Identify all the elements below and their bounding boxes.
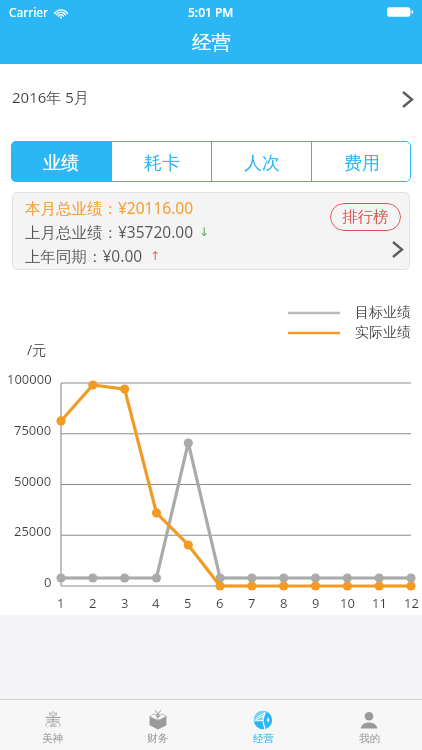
staticText: 25000 <box>14 522 52 540</box>
staticText: 8 <box>280 594 288 612</box>
staticText: Carrier <box>9 4 49 20</box>
staticText: 7 <box>248 594 256 612</box>
staticText: 5:01 PM <box>188 4 234 20</box>
staticText: 业绩 <box>43 152 79 175</box>
staticText: 耗卡 <box>144 152 180 175</box>
staticText: 经营 <box>192 30 231 55</box>
staticText: 4 <box>152 594 160 612</box>
button[interactable]: 耗卡 <box>112 141 211 182</box>
button[interactable]: 费用 <box>312 141 411 182</box>
staticText: 上年同期：¥0.00 <box>25 245 143 266</box>
button[interactable]: 经营 <box>210 700 316 750</box>
staticText: 50000 <box>14 472 52 490</box>
staticText: 9 <box>312 594 320 612</box>
staticText: ↑ <box>150 249 161 263</box>
button[interactable]: 我的 <box>316 700 422 750</box>
staticText: ↓ <box>199 225 210 239</box>
other: 美神 <box>43 710 63 730</box>
button[interactable]: 美神 <box>0 700 105 750</box>
staticText: 本月总业绩：¥20116.00 <box>25 197 194 218</box>
button[interactable]: 排行榜 <box>330 203 401 231</box>
other: 经营 <box>253 710 273 730</box>
staticText: 美神 <box>42 732 63 745</box>
staticText: 12 <box>404 594 419 612</box>
staticText: 6 <box>216 594 224 612</box>
other: Select month <box>403 92 412 107</box>
button[interactable]: 本月总业绩：¥20116.00 <box>12 192 410 270</box>
button[interactable]: 业绩 <box>11 141 111 182</box>
staticText: 10 <box>340 594 355 612</box>
other: 财务 <box>148 710 168 730</box>
staticText: 排行榜 <box>342 207 389 227</box>
button[interactable]: 人次 <box>212 141 311 182</box>
button[interactable]: 2016年 5月 <box>0 64 422 129</box>
staticText: 目标业绩 <box>355 304 411 322</box>
staticText: 经营 <box>253 732 274 745</box>
staticText: 财务 <box>147 732 168 745</box>
staticText: 我的 <box>359 732 380 745</box>
staticText: 11 <box>372 594 387 612</box>
staticText: 0 <box>44 573 52 591</box>
staticText: 2 <box>89 594 97 612</box>
staticText: 人次 <box>244 152 280 175</box>
staticText: 2016年 5月 <box>12 87 89 107</box>
other: 我的 <box>359 710 379 730</box>
staticText: 3 <box>121 594 129 612</box>
staticText: 上月总业绩：¥35720.00 <box>25 221 194 242</box>
button[interactable]: 财务 <box>105 700 210 750</box>
staticText: 75000 <box>14 421 52 439</box>
staticText: 5 <box>184 594 192 612</box>
staticText: 100000 <box>7 370 52 388</box>
staticText: 实际业绩 <box>355 324 411 342</box>
staticText: 费用 <box>344 152 380 175</box>
staticText: /元 <box>27 340 47 359</box>
staticText: 1 <box>57 594 65 612</box>
